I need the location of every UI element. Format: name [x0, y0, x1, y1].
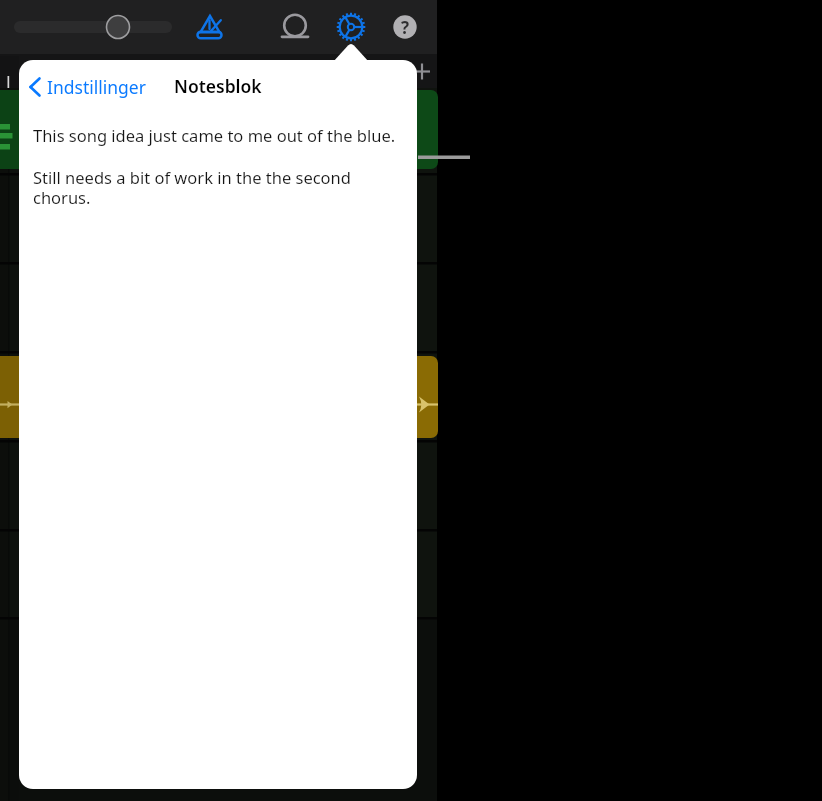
button[interactable] — [331, 7, 371, 47]
button[interactable] — [275, 6, 315, 46]
staticText: ? — [401, 16, 410, 39]
button[interactable] — [190, 7, 230, 47]
button[interactable]: Indstillinger — [26, 70, 146, 104]
button[interactable] — [408, 58, 436, 86]
button[interactable] — [14, 15, 172, 39]
staticText: Still needs a bit of work in the the sec… — [33, 166, 351, 209]
button[interactable]: ? — [391, 13, 419, 41]
staticText: Notesblok — [174, 74, 262, 98]
staticText: This song idea just came to me out of th… — [33, 124, 396, 146]
staticText: Indstillinger — [47, 75, 146, 99]
